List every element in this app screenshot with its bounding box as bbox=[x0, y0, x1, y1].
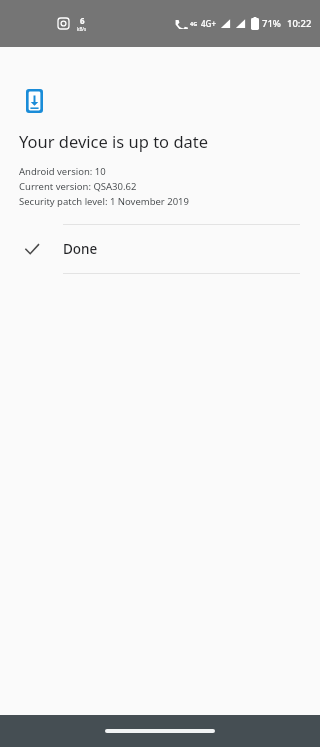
staticText: Done bbox=[63, 240, 98, 258]
staticText: 10:22 bbox=[287, 17, 312, 30]
other: Done bbox=[23, 240, 41, 258]
staticText: 71% bbox=[262, 17, 281, 30]
staticText: kB/s bbox=[77, 26, 87, 32]
button[interactable]: Done bbox=[0, 225, 320, 273]
staticText: Your device is up to date bbox=[19, 130, 209, 152]
staticText: Security patch level: 1 November 2019 bbox=[19, 195, 189, 208]
staticText: Current version: QSA30.62 bbox=[19, 180, 137, 193]
staticText: Android version: 10 bbox=[19, 165, 106, 178]
staticText: 4G+ bbox=[201, 18, 216, 29]
button[interactable]: Home gesture bbox=[105, 729, 215, 733]
staticText: 6 bbox=[80, 15, 85, 26]
staticText: 4G bbox=[190, 20, 198, 27]
